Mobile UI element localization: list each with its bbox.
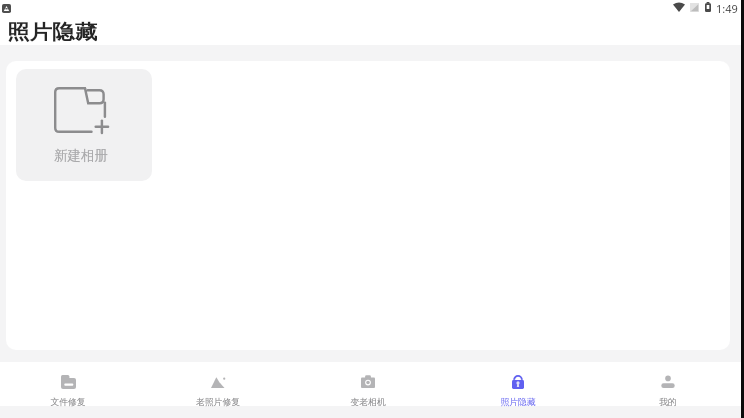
staticText: 照片隐藏 bbox=[7, 20, 97, 43]
other: Notification bbox=[2, 4, 11, 13]
staticText: 新建相册 bbox=[54, 147, 108, 164]
staticText: 照片隐藏 bbox=[500, 397, 536, 408]
staticText: 老照片修复 bbox=[196, 397, 240, 408]
button[interactable]: 我的 bbox=[593, 362, 743, 418]
staticText: 我的 bbox=[659, 397, 677, 408]
other: Wi-Fi bbox=[673, 3, 685, 12]
button[interactable]: 新建相册 bbox=[16, 69, 152, 181]
other: Mobile signal bbox=[690, 3, 699, 12]
staticText: 1:49 bbox=[716, 1, 738, 16]
staticText: 文件修复 bbox=[50, 397, 86, 408]
staticText: 变老相机 bbox=[350, 397, 386, 408]
button[interactable]: 文件修复 bbox=[0, 362, 143, 418]
button[interactable]: 变老相机 bbox=[293, 362, 443, 418]
button[interactable]: 老照片修复 bbox=[143, 362, 293, 418]
button[interactable]: 照片隐藏 bbox=[443, 362, 593, 418]
other: Battery bbox=[705, 2, 711, 12]
